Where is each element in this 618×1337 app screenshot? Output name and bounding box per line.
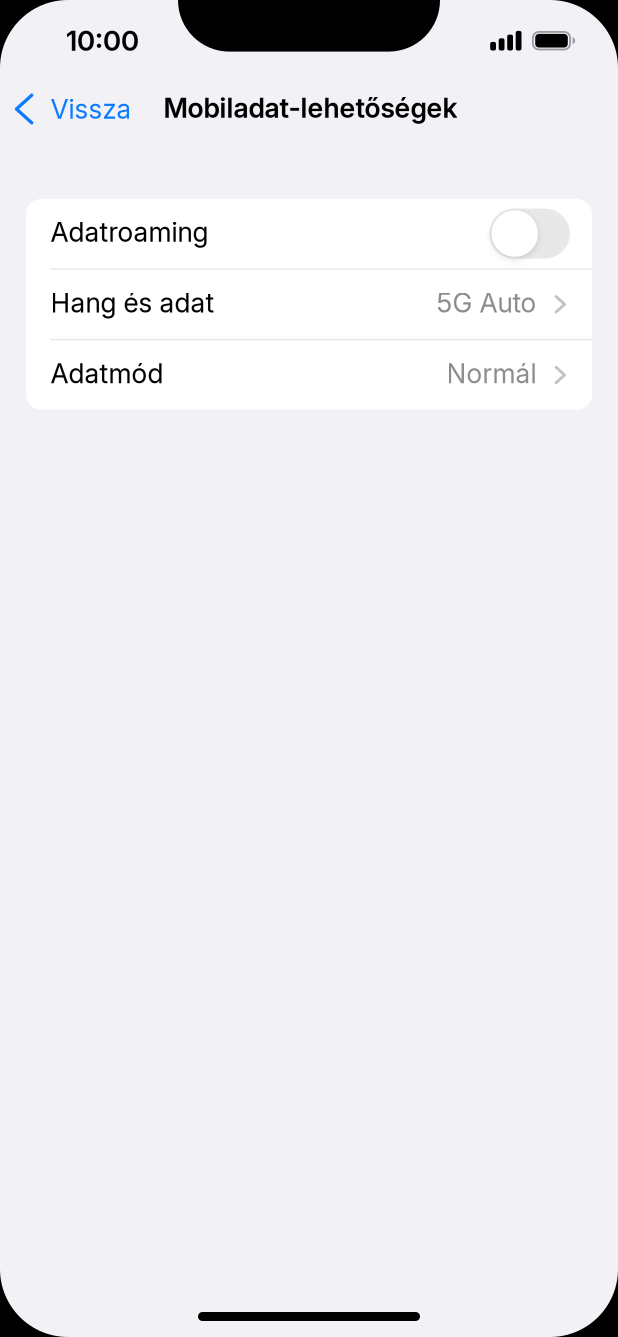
button[interactable]: Vissza — [0, 77, 139, 141]
button[interactable]: Adatroaming — [490, 209, 570, 259]
staticText: Hang és adat — [50, 287, 214, 319]
button[interactable]: Hang és adat — [26, 270, 592, 339]
staticText: Mobiladat-lehetőségek — [163, 92, 457, 124]
button[interactable]: Adatmód — [26, 340, 592, 410]
staticText: Normál — [447, 357, 537, 390]
staticText: 5G Auto — [437, 287, 537, 319]
staticText: Adatmód — [50, 357, 163, 390]
staticText: Adatroaming — [50, 216, 208, 248]
staticText: Vissza — [50, 93, 131, 125]
staticText: 10:00 — [66, 24, 139, 57]
